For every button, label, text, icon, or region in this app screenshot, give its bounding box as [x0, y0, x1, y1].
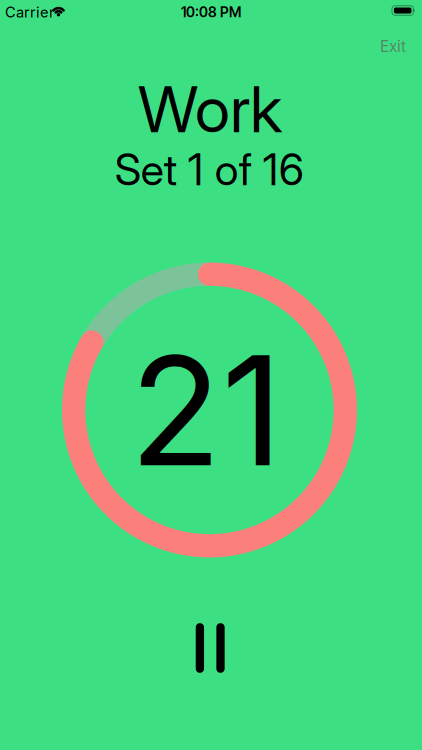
- staticText: Carrier: [5, 3, 55, 21]
- button[interactable]: Pause: [196, 623, 225, 673]
- staticText: 21: [129, 319, 282, 501]
- staticText: Work: [138, 71, 282, 148]
- staticText: Exit: [380, 37, 406, 56]
- staticText: Set 1 of 16: [115, 144, 304, 196]
- staticText: 10:08 PM: [181, 3, 241, 20]
- button[interactable]: Exit: [380, 37, 406, 56]
